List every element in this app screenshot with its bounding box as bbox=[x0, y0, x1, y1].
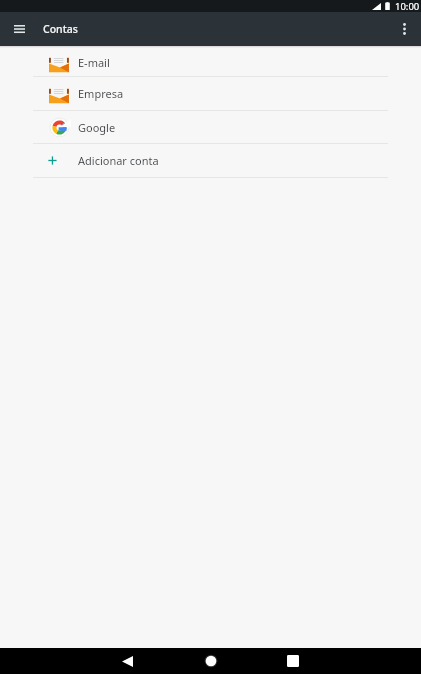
staticText: Google bbox=[78, 120, 116, 135]
button[interactable]: Navigation menu bbox=[0, 12, 38, 46]
button[interactable]: Back bbox=[87, 648, 167, 674]
button[interactable]: Adicionar conta bbox=[0, 144, 421, 178]
staticText: E-mail bbox=[78, 55, 110, 70]
button[interactable]: Recent apps bbox=[254, 648, 331, 674]
staticText: Empresa bbox=[78, 86, 124, 101]
button[interactable]: Google bbox=[0, 111, 421, 144]
button[interactable]: Home bbox=[167, 648, 254, 674]
button[interactable]: More options bbox=[387, 12, 421, 46]
staticText: Contas bbox=[43, 22, 78, 36]
button[interactable]: E-mail bbox=[0, 48, 421, 77]
button[interactable]: Empresa bbox=[0, 77, 421, 111]
staticText: 10:00 bbox=[395, 0, 420, 12]
staticText: Adicionar conta bbox=[78, 153, 159, 168]
